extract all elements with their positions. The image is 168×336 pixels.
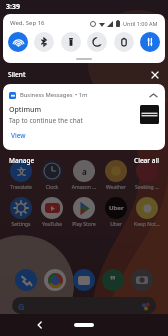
staticText: Uber: [109, 204, 124, 212]
staticText: Keep Not...: [132, 221, 162, 228]
staticText: Play Store: [69, 221, 99, 228]
staticText: Business Messages: [20, 91, 73, 99]
button[interactable]: Clock: [37, 160, 67, 191]
staticText: Silent: [8, 70, 26, 79]
staticText: Clock: [37, 184, 67, 191]
button[interactable]: Back: [32, 317, 48, 333]
button[interactable]: Wi-Fi: [8, 32, 28, 52]
button[interactable]: YouTube: [37, 197, 67, 228]
button[interactable]: Battery saver: [114, 32, 134, 52]
button[interactable]: Phone: [15, 269, 37, 291]
staticText: G: [18, 300, 25, 312]
staticText: Uber: [101, 221, 131, 228]
staticText: 文: [17, 166, 26, 177]
button[interactable]: 文: [6, 160, 36, 191]
button[interactable]: Weather: [101, 160, 131, 191]
staticText: Optimum: [9, 105, 42, 115]
button[interactable]: Bluetooth: [34, 32, 54, 52]
staticText: • 1m: [75, 91, 88, 99]
staticText: YouTube: [37, 221, 67, 228]
staticText: Tap to continue the chat: [9, 116, 83, 125]
staticText: ": [110, 272, 116, 288]
staticText: Amazon ...: [69, 184, 99, 191]
button[interactable]: G: [12, 297, 156, 314]
button[interactable]: Messages: [73, 269, 95, 291]
button[interactable]: Uber: [101, 197, 131, 228]
button[interactable]: Hangouts: [102, 269, 124, 291]
button[interactable]: Seeking ...: [132, 160, 162, 191]
staticText: Until 1:00 AM: [123, 20, 158, 27]
staticText: Clear all: [134, 156, 159, 165]
staticText: 3:39: [6, 2, 20, 12]
button[interactable]: Business Messages: [3, 84, 165, 150]
staticText: Wed, Sep 16: [10, 19, 45, 27]
staticText: Manage: [9, 156, 35, 165]
button[interactable]: Camera: [131, 269, 153, 291]
staticText: Weather: [101, 184, 131, 191]
button[interactable]: View: [9, 130, 28, 141]
button[interactable]: Do not disturb: [87, 32, 107, 52]
staticText: Settings: [6, 221, 36, 228]
button[interactable]: Close: [149, 69, 160, 80]
button[interactable]: Manage: [7, 155, 37, 166]
staticText: a: [82, 166, 87, 177]
staticText: Translate: [6, 184, 36, 191]
button[interactable]: Keep Not...: [132, 197, 162, 228]
button[interactable]: Clear all: [132, 155, 161, 166]
button[interactable]: Settings: [6, 197, 36, 228]
button[interactable]: Home: [74, 323, 94, 327]
button[interactable]: Mobile data: [140, 32, 160, 52]
staticText: Seeking ...: [132, 184, 162, 191]
staticText: View: [11, 131, 26, 140]
button[interactable]: a: [69, 160, 99, 191]
button[interactable]: Chrome: [44, 269, 66, 291]
button[interactable]: Flashlight: [61, 32, 81, 52]
button[interactable]: Collapse: [147, 89, 159, 101]
button[interactable]: Play Store: [69, 197, 99, 228]
